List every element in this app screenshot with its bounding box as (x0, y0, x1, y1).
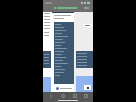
button[interactable]: Address bar (43, 6, 93, 11)
button[interactable]: Home (59, 93, 66, 99)
button[interactable]: Back (47, 93, 54, 99)
button[interactable]: Recent apps (71, 93, 78, 99)
button[interactable]: Tabs (82, 93, 89, 99)
